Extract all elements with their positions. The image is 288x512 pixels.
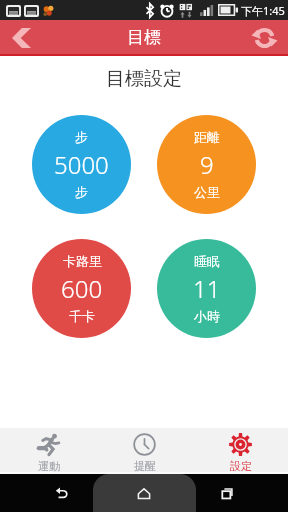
staticText: 5000 [54, 148, 109, 181]
staticText: 小時 [194, 308, 220, 324]
button[interactable]: 提醒 [96, 428, 192, 472]
button[interactable]: 距離 [157, 115, 256, 214]
staticText: 步 [75, 184, 88, 200]
button[interactable]: 運動 [0, 428, 96, 472]
staticText: 提醒 [134, 459, 156, 472]
button[interactable]: 步 [32, 115, 131, 214]
button[interactable]: Recent apps [205, 474, 249, 512]
staticText: 步 [75, 129, 88, 145]
staticText: 設定 [230, 459, 252, 472]
staticText: 千卡 [69, 308, 95, 324]
staticText: 目標 [127, 27, 161, 48]
staticText: 600 [61, 272, 103, 305]
staticText: 目標設定 [0, 67, 288, 91]
staticText: 卡路里 [63, 253, 102, 269]
button[interactable]: Refresh [244, 20, 288, 54]
staticText: 公里 [194, 184, 220, 200]
staticText: 下午1:45 [241, 3, 285, 18]
staticText: 距離 [194, 129, 220, 145]
staticText: 9 [200, 148, 214, 181]
button[interactable]: Back [0, 20, 42, 54]
staticText: 睡眠 [194, 253, 220, 269]
button[interactable]: 睡眠 [157, 239, 256, 338]
staticText: 運動 [38, 459, 60, 472]
staticText: 11 [193, 272, 221, 305]
button[interactable]: 卡路里 [32, 239, 131, 338]
button[interactable]: 設定 [192, 428, 288, 472]
button[interactable]: Back [39, 474, 83, 512]
button[interactable]: Home [122, 474, 166, 512]
